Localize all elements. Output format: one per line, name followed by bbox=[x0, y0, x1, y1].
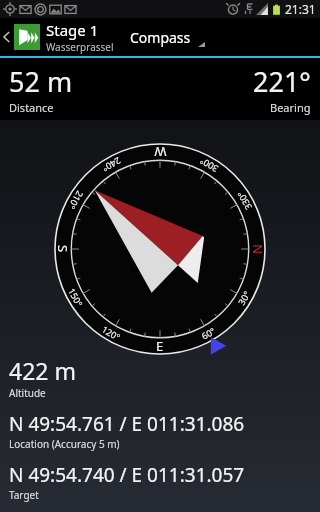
staticText: N 49:54.761 / E 011:31.086 bbox=[9, 411, 245, 437]
button[interactable]: Stage 1 bbox=[14, 18, 320, 56]
staticText: N 49:54.740 / E 011:31.057 bbox=[9, 462, 245, 488]
button[interactable]: N 49:54.740 / E 011:31.057 bbox=[9, 462, 320, 502]
staticText: Target bbox=[9, 488, 39, 502]
staticText: Altitude bbox=[9, 386, 46, 400]
staticText: 422 m bbox=[9, 355, 76, 386]
button[interactable]: Navigate up bbox=[0, 18, 14, 56]
staticText: Location (Accuracy 5 m) bbox=[9, 437, 120, 451]
staticText: Stage 1 bbox=[46, 20, 99, 40]
staticText: 21:31 bbox=[285, 1, 316, 17]
button[interactable]: 422 m bbox=[9, 355, 320, 400]
button[interactable]: N 49:54.761 / E 011:31.086 bbox=[9, 411, 320, 451]
staticText: Wasserprassel bbox=[46, 40, 114, 54]
staticText: Distance bbox=[9, 100, 54, 115]
staticText: Bearing bbox=[270, 100, 311, 115]
staticText: 52 m bbox=[9, 63, 73, 100]
staticText: 221° bbox=[253, 63, 311, 100]
other: Compass bbox=[42, 143, 278, 355]
staticText: Compass bbox=[130, 28, 191, 47]
